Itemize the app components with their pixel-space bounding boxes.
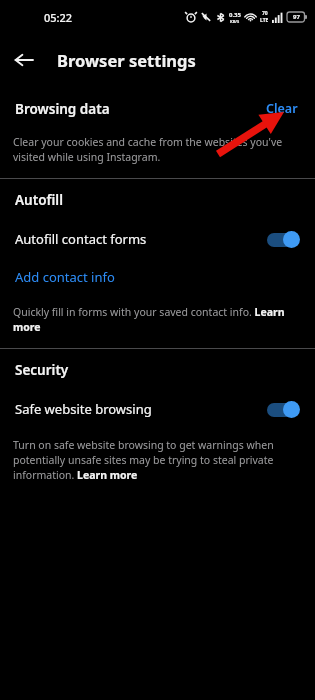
staticText: Clear (266, 100, 298, 117)
staticText: Security (15, 361, 69, 379)
staticText: Quickly fill in forms with your saved co… (13, 305, 302, 334)
staticText: Browsing data (15, 100, 264, 118)
staticText: Clear your cookies and cache from the we… (13, 135, 302, 164)
staticText: 97 (293, 13, 300, 21)
staticText: 70 (262, 10, 268, 17)
staticText: 0.35 (229, 11, 241, 19)
staticText: Autofill (15, 191, 63, 209)
staticText: KB/S (230, 19, 240, 24)
button[interactable]: Toggle on (267, 231, 300, 248)
staticText: Autofill contact forms (15, 230, 267, 248)
staticText: Add contact info (15, 268, 115, 286)
staticText: Turn on safe website browsing to get war… (13, 438, 302, 482)
staticText: LTE (260, 17, 269, 24)
staticText: 05:22 (44, 10, 73, 25)
staticText: Safe website browsing (15, 400, 267, 418)
button[interactable]: Back (8, 44, 40, 76)
button[interactable]: Add contact info (13, 267, 117, 287)
button[interactable]: Toggle on (267, 401, 300, 418)
staticText: Browser settings (57, 49, 196, 71)
button[interactable]: Autofill contact forms (0, 226, 315, 252)
button[interactable]: Clear (264, 98, 300, 119)
button[interactable]: Safe website browsing (0, 396, 315, 422)
